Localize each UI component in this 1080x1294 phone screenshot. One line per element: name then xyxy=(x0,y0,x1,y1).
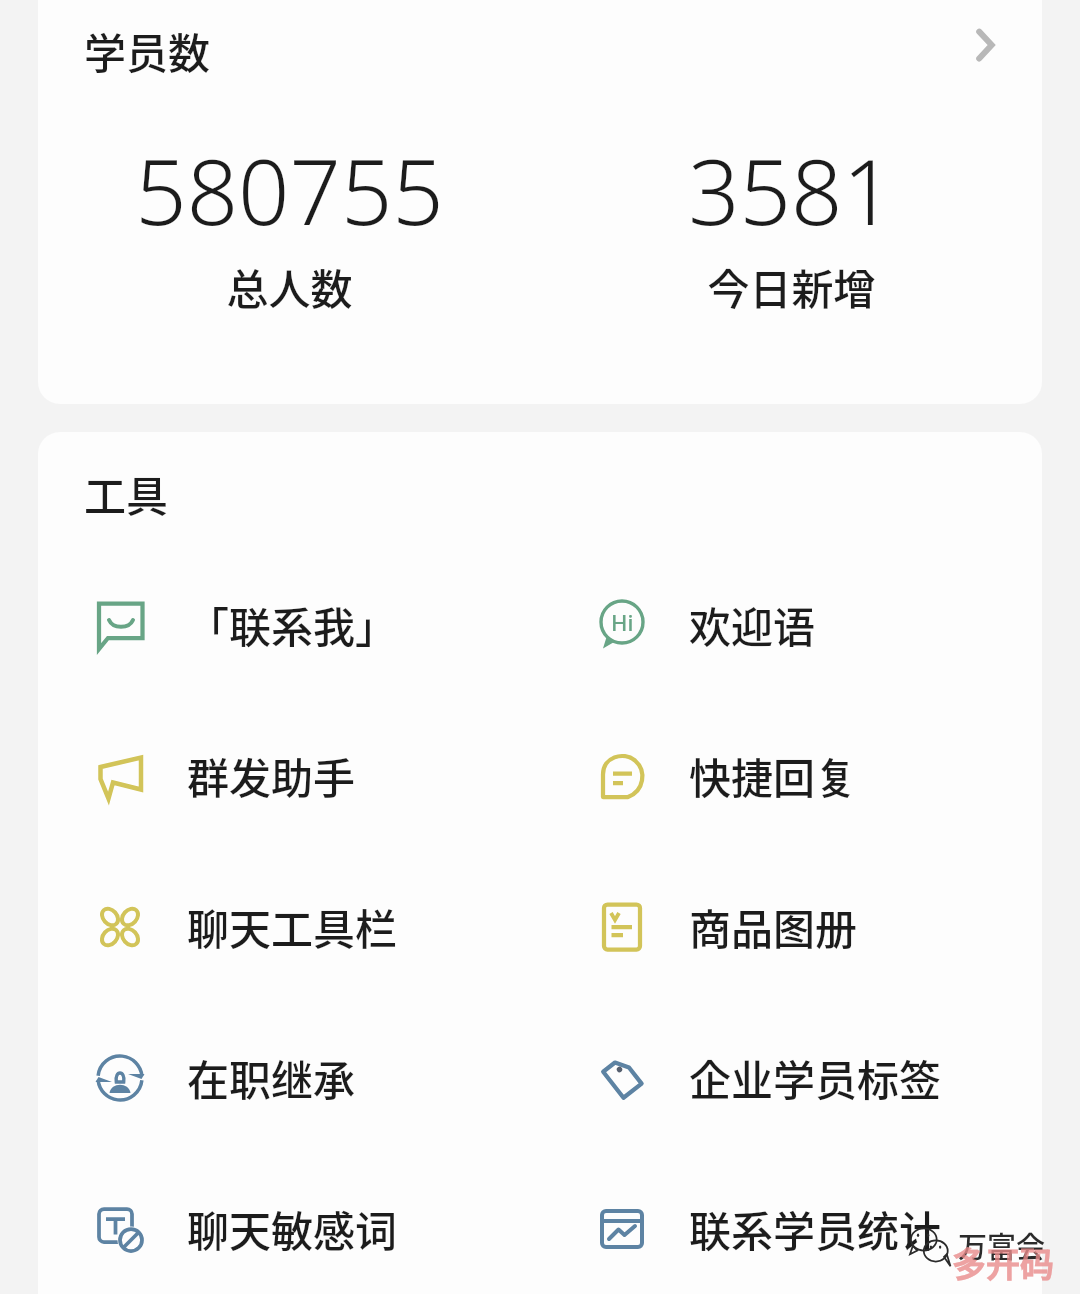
button[interactable]: 群发助手 xyxy=(38,700,540,851)
staticText: 学员数 xyxy=(84,20,211,81)
staticText: 聊天敏感词 xyxy=(187,1198,398,1259)
staticText: 总人数 xyxy=(226,256,353,317)
staticText: 企业学员标签 xyxy=(689,1047,942,1108)
button[interactable]: 快捷回复 xyxy=(540,700,1042,851)
staticText: 工具 xyxy=(84,463,169,524)
staticText: 商品图册 xyxy=(689,896,858,957)
button[interactable]: 「联系我」 xyxy=(38,549,540,700)
staticText: 在职继承 xyxy=(187,1047,356,1108)
button[interactable]: 580755 xyxy=(38,129,540,317)
button[interactable]: 3581 xyxy=(540,129,1042,317)
staticText: 万富会 xyxy=(958,1224,1046,1266)
staticText: 欢迎语 xyxy=(689,594,816,655)
button[interactable]: 企业学员标签 xyxy=(540,1002,1042,1153)
staticText: 群发助手 xyxy=(187,745,356,806)
staticText: 联系学员统计 xyxy=(689,1198,942,1259)
staticText: 多开码 xyxy=(952,1238,1054,1287)
button[interactable]: 在职继承 xyxy=(38,1002,540,1153)
staticText: 今日新增 xyxy=(707,256,876,317)
staticText: 580755 xyxy=(135,129,444,252)
staticText: 快捷回复 xyxy=(689,745,858,806)
button[interactable]: More xyxy=(960,22,1008,70)
staticText: 「联系我」 xyxy=(187,594,398,655)
button[interactable]: Hi xyxy=(540,549,1042,700)
staticText: 3581 xyxy=(688,129,894,252)
staticText: Hi xyxy=(611,607,634,637)
staticText: 聊天工具栏 xyxy=(187,896,398,957)
button[interactable]: 聊天工具栏 xyxy=(38,851,540,1002)
button[interactable]: 联系学员统计 xyxy=(540,1153,1042,1294)
button[interactable]: 学员数 xyxy=(38,0,1042,404)
button[interactable]: 商品图册 xyxy=(540,851,1042,1002)
button[interactable]: 聊天敏感词 xyxy=(38,1153,540,1294)
